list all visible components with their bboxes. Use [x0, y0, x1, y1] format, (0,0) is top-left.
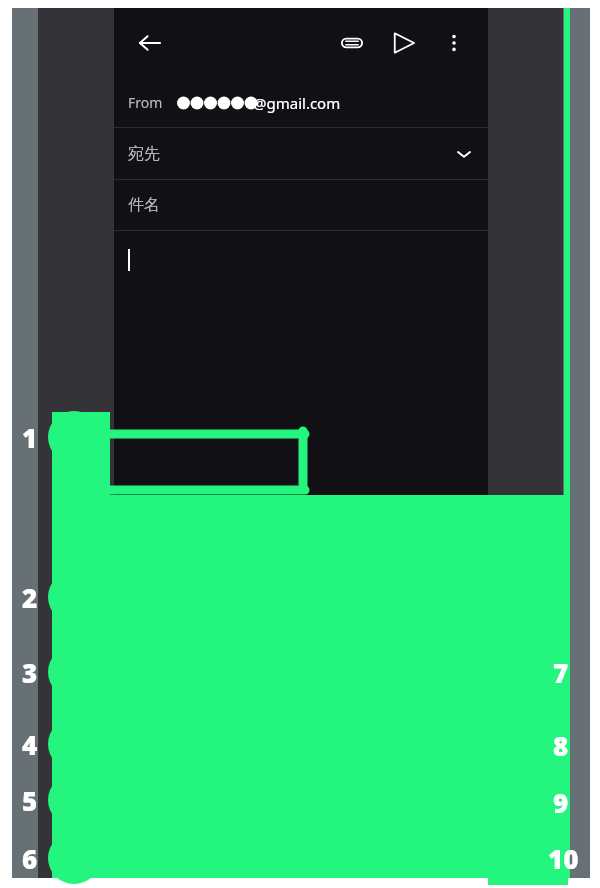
button[interactable] [114, 231, 488, 495]
staticText: 2 [22, 580, 38, 615]
button[interactable]: 宛先 [114, 128, 488, 179]
button[interactable]: Back [128, 21, 172, 65]
staticText: 件名 [128, 195, 160, 215]
button[interactable]: More options [434, 23, 474, 63]
staticText: 9 [553, 785, 569, 820]
staticText: From [128, 93, 163, 112]
staticText: 宛先 [128, 144, 160, 164]
button[interactable]: Send [382, 21, 426, 65]
staticText: 6 [22, 841, 38, 876]
staticText: 1 [22, 420, 38, 455]
staticText: @gmail.com [253, 93, 341, 113]
staticText: 5 [22, 783, 38, 818]
button[interactable]: 件名 [114, 180, 488, 230]
staticText: 10 [548, 841, 579, 876]
button[interactable]: Attach [330, 21, 374, 65]
button[interactable]: From [114, 78, 488, 127]
staticText: 3 [22, 655, 38, 690]
staticText: 8 [553, 728, 569, 763]
staticText: 4 [22, 727, 38, 762]
